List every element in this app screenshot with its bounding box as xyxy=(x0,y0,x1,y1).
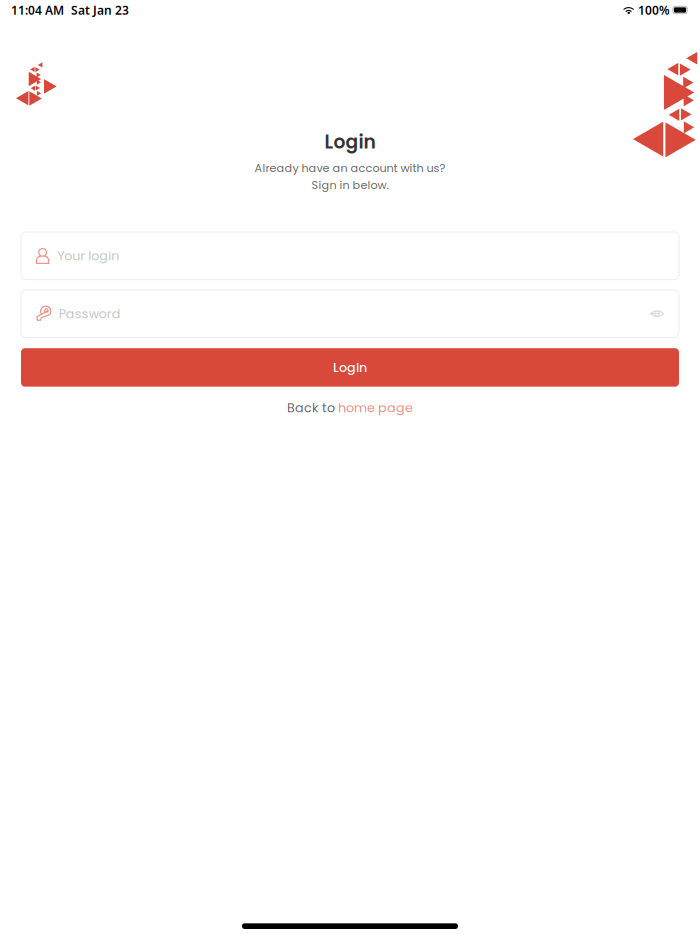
staticText: home page xyxy=(338,399,413,416)
staticText: Your login xyxy=(57,247,119,265)
staticText: 100% xyxy=(638,2,670,18)
staticText: Back to xyxy=(287,399,335,416)
staticText: Login xyxy=(324,129,375,155)
staticText: Sign in below. xyxy=(311,177,388,193)
staticText: Login xyxy=(333,359,367,376)
staticText: 11:04 AM xyxy=(11,2,64,18)
staticText: Already have an account with us? xyxy=(254,160,445,176)
button[interactable]: Back to xyxy=(287,401,413,415)
staticText: Sat Jan 23 xyxy=(71,2,129,18)
button[interactable]: Your login xyxy=(21,232,679,280)
button[interactable]: Login xyxy=(21,348,679,387)
staticText: Password xyxy=(59,305,121,322)
button[interactable]: Password xyxy=(21,290,679,337)
